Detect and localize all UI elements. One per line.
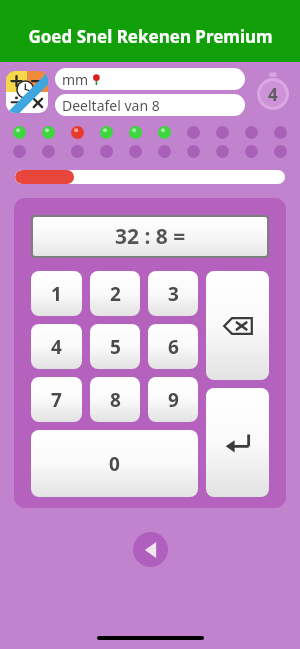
button[interactable]: Backspace bbox=[206, 271, 269, 380]
staticText: 8 bbox=[110, 387, 121, 413]
button[interactable]: Timer bbox=[252, 71, 294, 113]
button[interactable]: 6 bbox=[148, 324, 198, 369]
button[interactable]: App icon bbox=[6, 71, 48, 113]
staticText: Goed Snel Rekenen Premium bbox=[28, 25, 273, 48]
button[interactable]: 4 bbox=[31, 324, 82, 369]
staticText: 1 bbox=[51, 281, 62, 307]
button[interactable]: 1 bbox=[31, 271, 82, 316]
staticText: 7 bbox=[51, 387, 62, 413]
button[interactable]: Back bbox=[133, 532, 168, 567]
staticText: 6 bbox=[168, 334, 179, 360]
button[interactable]: Enter bbox=[206, 388, 269, 497]
staticText: 3 bbox=[168, 281, 179, 307]
staticText: 0 bbox=[109, 451, 120, 477]
staticText: mm bbox=[62, 70, 89, 89]
button[interactable]: 3 bbox=[148, 271, 198, 316]
staticText: Deeltafel van 8 bbox=[62, 96, 160, 115]
staticText: 9 bbox=[168, 387, 179, 413]
staticText: 32 : 8 = bbox=[115, 222, 186, 251]
button[interactable]: 5 bbox=[90, 324, 140, 369]
button[interactable]: 2 bbox=[90, 271, 140, 316]
button[interactable]: 9 bbox=[148, 377, 198, 422]
staticText: 4 bbox=[268, 83, 278, 106]
button[interactable]: 7 bbox=[31, 377, 82, 422]
staticText: 4 bbox=[51, 334, 62, 360]
button[interactable]: Deeltafel van 8 bbox=[55, 94, 245, 116]
staticText: 5 bbox=[110, 334, 121, 360]
button[interactable]: mm bbox=[55, 68, 245, 90]
staticText: 2 bbox=[110, 281, 121, 307]
button[interactable]: 8 bbox=[90, 377, 140, 422]
button[interactable]: 0 bbox=[31, 430, 198, 497]
